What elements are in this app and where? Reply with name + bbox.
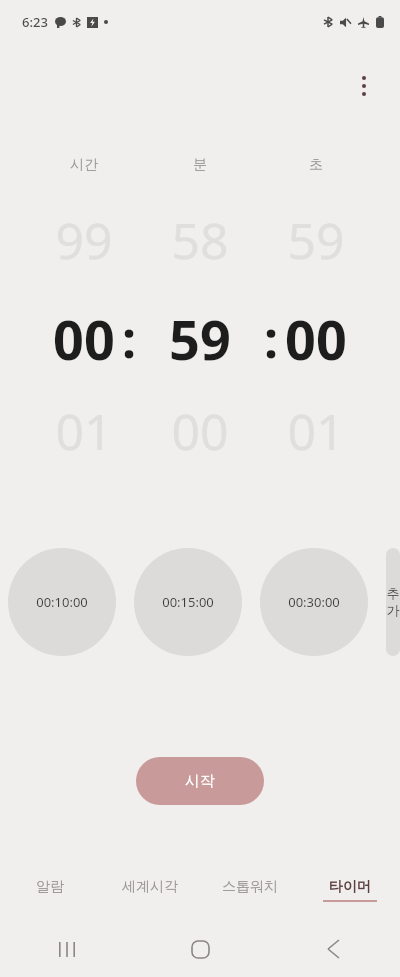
button[interactable]: More options	[340, 62, 388, 110]
staticText: 01	[55, 397, 113, 457]
staticText: 알람	[36, 878, 64, 896]
staticText: 00:30:00	[288, 593, 340, 611]
button[interactable]: 시작	[136, 757, 264, 805]
staticText: 00:15:00	[162, 593, 214, 611]
staticText: 시간	[70, 156, 98, 174]
staticText: 타이머	[329, 878, 371, 896]
staticText: 59	[169, 302, 231, 376]
button[interactable]: 세계시각	[100, 862, 200, 914]
staticText: 스톱워치	[222, 878, 278, 896]
staticText: 세계시각	[122, 878, 178, 896]
staticText: :	[122, 305, 137, 373]
staticText: :	[264, 305, 279, 373]
staticText: 분	[193, 156, 207, 174]
button[interactable]: Back	[267, 921, 400, 977]
staticText: 59	[287, 206, 345, 266]
staticText: 99	[55, 206, 113, 266]
staticText: 추가	[386, 585, 400, 619]
button[interactable]: Recents	[0, 921, 134, 977]
staticText: 초	[309, 156, 323, 174]
button[interactable]: 00	[26, 300, 142, 378]
button[interactable]: 00:30:00	[260, 548, 368, 656]
button[interactable]: 타이머	[300, 862, 400, 914]
button[interactable]: 59	[142, 300, 258, 378]
staticText: 00:10:00	[36, 593, 88, 611]
staticText: 시작	[185, 772, 215, 791]
staticText: 00	[53, 302, 115, 376]
button[interactable]: 추가	[386, 548, 400, 656]
button[interactable]: 00:15:00	[134, 548, 242, 656]
staticText: 58	[171, 206, 229, 266]
button[interactable]: Home	[134, 921, 267, 977]
staticText: 01	[287, 397, 345, 457]
staticText: 00	[171, 397, 229, 457]
button[interactable]: 00	[258, 300, 374, 378]
button[interactable]: 스톱워치	[200, 862, 300, 914]
button[interactable]: 00:10:00	[8, 548, 116, 656]
button[interactable]: 알람	[0, 862, 100, 914]
staticText: 6:23	[22, 13, 48, 31]
staticText: 00	[285, 302, 347, 376]
